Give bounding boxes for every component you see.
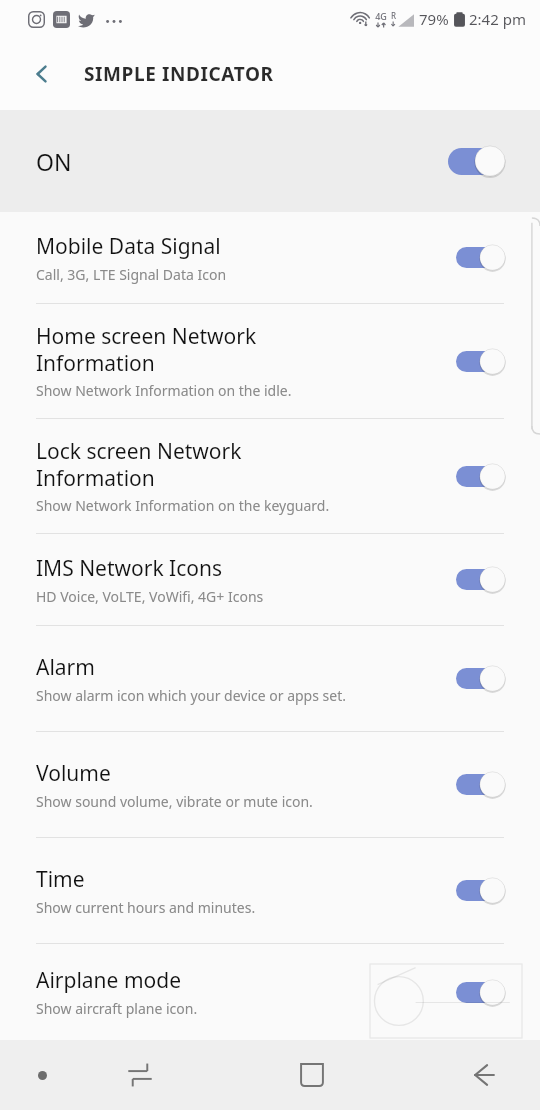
- staticText: Mobile Data Signal: [36, 232, 221, 261]
- button[interactable]: Back: [428, 1040, 540, 1110]
- staticText: Call, 3G, LTE Signal Data Icon: [36, 265, 227, 284]
- staticText: Show Network Information on the keyguard…: [36, 496, 330, 515]
- staticText: 4G: [375, 10, 387, 22]
- button[interactable]: Navigate up: [18, 50, 66, 98]
- staticText: Show current hours and minutes.: [36, 898, 256, 917]
- button[interactable]: Toggle: [456, 345, 506, 378]
- staticText: ON: [36, 146, 448, 177]
- button[interactable]: Toggle: [456, 874, 506, 907]
- staticText: Show Network Information on the idle.: [36, 381, 292, 400]
- staticText: Time: [36, 865, 85, 894]
- staticText: Alarm: [36, 653, 95, 682]
- button[interactable]: Airplane mode: [0, 944, 540, 1040]
- staticText: Show alarm icon which your device or app…: [36, 686, 346, 705]
- button[interactable]: Lock screen Network Information: [0, 419, 540, 533]
- button[interactable]: Toggle: [456, 976, 506, 1009]
- button[interactable]: Time: [0, 838, 540, 943]
- button[interactable]: Home screen Network Information: [0, 304, 540, 418]
- staticText: IMS Network Icons: [36, 554, 223, 583]
- staticText: 2:42 pm: [469, 9, 526, 29]
- staticText: Home screen Network Information: [36, 322, 257, 377]
- staticText: SIMPLE INDICATOR: [84, 61, 274, 87]
- staticText: Volume: [36, 759, 111, 788]
- button[interactable]: IMS Network Icons: [0, 534, 540, 625]
- button[interactable]: Toggle: [456, 563, 506, 596]
- button[interactable]: Toggle: [456, 768, 506, 801]
- button[interactable]: More options: [0, 1040, 84, 1110]
- button[interactable]: Toggle: [448, 142, 506, 180]
- button[interactable]: Toggle: [456, 662, 506, 695]
- staticText: R: [391, 10, 397, 21]
- button[interactable]: Mobile Data Signal: [0, 212, 540, 303]
- staticText: Show aircraft plane icon.: [36, 999, 198, 1018]
- staticText: 79%: [419, 9, 449, 29]
- button[interactable]: Toggle: [456, 460, 506, 493]
- button[interactable]: ON: [0, 110, 540, 212]
- button[interactable]: Alarm: [0, 626, 540, 731]
- staticText: HD Voice, VoLTE, VoWifi, 4G+ Icons: [36, 587, 264, 606]
- button[interactable]: Toggle: [456, 241, 506, 274]
- staticText: Airplane mode: [36, 966, 182, 995]
- button[interactable]: Volume: [0, 732, 540, 837]
- staticText: Show sound volume, vibrate or mute icon.: [36, 792, 313, 811]
- button[interactable]: Recent apps: [84, 1040, 196, 1110]
- button[interactable]: Home: [196, 1040, 428, 1110]
- staticText: Lock screen Network Information: [36, 437, 242, 492]
